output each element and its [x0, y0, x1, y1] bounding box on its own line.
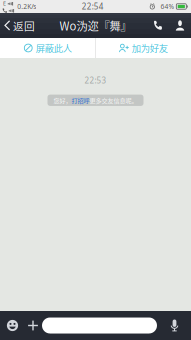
button[interactable]: Profile: [169, 13, 191, 38]
staticText: 屏蔽此人: [36, 41, 72, 55]
button[interactable]: Call: [147, 13, 169, 38]
staticText: 您好，: [53, 96, 71, 105]
button[interactable]: 屏蔽此人: [0, 38, 95, 58]
staticText: 返回: [13, 18, 35, 33]
staticText: Wo沩迩『舞』: [59, 17, 131, 34]
staticText: 打招呼: [71, 96, 89, 105]
staticText: 64%: [160, 2, 174, 11]
staticText: 更多交友信息呢。: [89, 96, 137, 105]
button[interactable]: 加为好友: [95, 38, 191, 58]
button[interactable]: Emoji: [0, 311, 25, 340]
staticText: E: [3, 0, 6, 7]
staticText: 0.2K/s: [17, 2, 36, 11]
button[interactable]: Voice message: [158, 311, 191, 340]
button[interactable]: Add attachment: [25, 311, 41, 340]
button[interactable]: Message input: [41, 311, 158, 340]
button[interactable]: 返回: [0, 13, 38, 38]
staticText: 加为好友: [132, 41, 168, 55]
staticText: 22:54: [82, 1, 104, 12]
staticText: 22:53: [84, 75, 106, 86]
